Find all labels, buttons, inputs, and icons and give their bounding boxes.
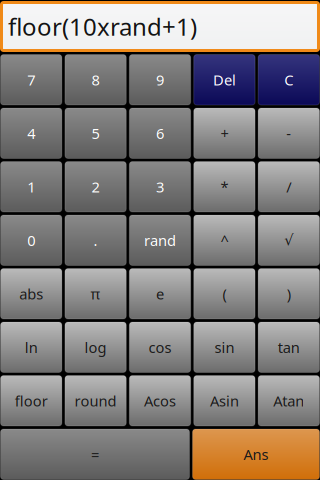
button[interactable]: 9 [129,54,191,105]
staticText: = [91,444,99,464]
staticText: sin [214,337,234,357]
button[interactable]: 4 [0,107,62,159]
staticText: cos [148,337,171,357]
staticText: 5 [92,123,100,143]
button[interactable]: * [193,161,256,212]
button[interactable]: round [64,375,127,426]
staticText: 7 [27,70,35,89]
staticText: Atan [273,391,304,410]
button[interactable]: cos [129,321,191,373]
button[interactable]: 3 [129,161,191,212]
staticText: ln [25,337,38,357]
button[interactable]: Atan [258,375,320,426]
button[interactable]: abs [0,268,62,319]
button[interactable]: / [258,161,320,212]
staticText: e [156,284,164,303]
button[interactable]: 8 [64,54,127,105]
button[interactable]: 5 [64,107,127,159]
staticText: ) [287,284,291,303]
staticText: ^ [220,230,228,250]
button[interactable]: + [193,107,256,159]
button[interactable]: 7 [0,54,62,105]
button[interactable]: 6 [129,107,191,159]
button[interactable]: Asin [193,375,256,426]
staticText: abs [19,284,43,303]
button[interactable]: ) [258,268,320,319]
staticText: floor [15,391,48,410]
staticText: - [286,123,291,143]
button[interactable]: Acos [129,375,191,426]
button[interactable]: 0 [0,214,62,266]
staticText: √ [284,232,293,248]
staticText: 1 [27,177,35,196]
staticText: . [94,230,98,250]
staticText: 9 [156,70,164,89]
button[interactable]: rand [129,214,191,266]
button[interactable]: floor [0,375,62,426]
staticText: Del [213,70,236,89]
button[interactable]: log [64,321,127,373]
staticText: 2 [92,177,100,196]
button[interactable]: 2 [64,161,127,212]
staticText: Asin [210,391,239,410]
staticText: floor(10xrand+1) [8,11,197,42]
staticText: C [284,70,293,89]
button[interactable]: sin [193,321,256,373]
button[interactable]: Ans [192,428,320,480]
staticText: 6 [156,123,164,143]
button[interactable]: ( [193,268,256,319]
staticText: / [286,177,291,196]
button[interactable]: ^ [193,214,256,266]
staticText: Acos [144,391,176,410]
staticText: log [85,337,107,357]
button[interactable]: π [64,268,127,319]
staticText: 8 [92,70,100,89]
button[interactable]: C [258,54,320,105]
button[interactable]: . [64,214,127,266]
button[interactable]: 1 [0,161,62,212]
staticText: * [220,177,228,196]
staticText: 0 [27,230,35,250]
button[interactable]: e [129,268,191,319]
button[interactable]: √ [258,214,320,266]
staticText: 3 [156,177,164,196]
button[interactable]: - [258,107,320,159]
staticText: Ans [243,444,268,464]
staticText: ( [222,284,226,303]
button[interactable]: Del [193,54,256,105]
staticText: rand [144,230,176,250]
staticText: 4 [27,123,35,143]
button[interactable]: tan [258,321,320,373]
staticText: round [75,391,117,410]
button[interactable]: = [0,428,190,480]
staticText: + [220,123,228,143]
staticText: π [91,284,101,303]
button[interactable]: ln [0,321,62,373]
staticText: tan [278,337,300,357]
